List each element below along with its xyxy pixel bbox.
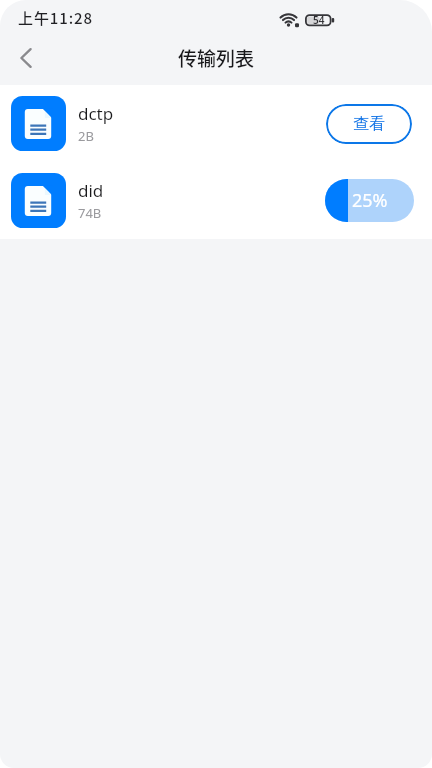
staticText: 74B	[78, 204, 102, 222]
staticText: 25%	[352, 188, 388, 213]
staticText: 查看	[353, 114, 385, 134]
staticText: 传输列表	[178, 44, 255, 72]
button[interactable]: did	[0, 162, 432, 239]
button[interactable]: 25%	[325, 179, 414, 222]
button[interactable]: dctp	[0, 85, 432, 162]
button[interactable]	[8, 40, 44, 76]
staticText: 54	[313, 13, 325, 27]
staticText: dctp	[78, 102, 114, 125]
button[interactable]: 查看	[326, 104, 412, 144]
staticText: 上午11:28	[18, 7, 93, 29]
staticText: did	[78, 179, 104, 202]
staticText: 2B	[78, 127, 94, 145]
